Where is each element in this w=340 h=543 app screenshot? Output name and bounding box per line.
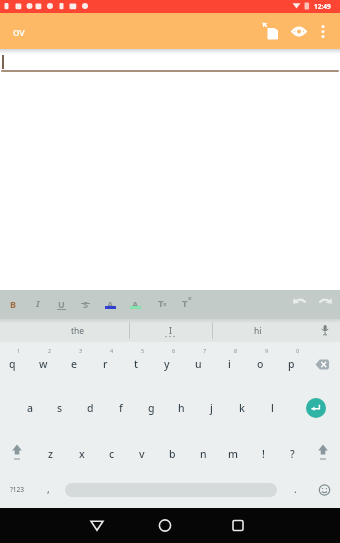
button[interactable]: ?123 — [4, 470, 30, 508]
button[interactable] — [313, 19, 333, 43]
button[interactable]: l — [257, 388, 287, 428]
button[interactable]: j — [196, 388, 226, 428]
staticText: 4 — [110, 347, 114, 354]
button[interactable]: A — [127, 295, 144, 312]
staticText: 8 — [234, 347, 238, 354]
staticText: the — [71, 325, 85, 337]
button[interactable]: A — [102, 295, 119, 312]
button[interactable]: T — [152, 295, 169, 312]
staticText: k — [239, 401, 245, 415]
button[interactable]: z — [36, 434, 66, 474]
staticText: ! — [262, 447, 265, 461]
button[interactable] — [312, 471, 338, 509]
button[interactable]: p — [276, 344, 306, 384]
button[interactable] — [81, 510, 113, 542]
button[interactable] — [0, 290, 340, 320]
staticText: y — [164, 357, 170, 371]
button[interactable]: . — [285, 470, 305, 508]
staticText: t — [134, 357, 139, 371]
button[interactable]: h — [166, 388, 196, 428]
staticText: 3 — [79, 347, 83, 354]
staticText: A — [132, 298, 139, 310]
staticText: 7 — [203, 347, 207, 354]
button[interactable]: T — [176, 295, 193, 312]
staticText: i — [228, 357, 231, 371]
button[interactable]: e — [59, 344, 89, 384]
button[interactable]: U — [53, 295, 70, 312]
button[interactable]: w — [28, 344, 58, 384]
button[interactable]: a — [15, 388, 45, 428]
button[interactable]: b — [157, 434, 187, 474]
button[interactable]: B — [4, 295, 21, 312]
staticText: v — [139, 447, 145, 461]
staticText: e — [71, 357, 78, 371]
button[interactable] — [149, 510, 181, 542]
button[interactable]: c — [97, 434, 127, 474]
staticText: l — [271, 401, 274, 415]
button[interactable] — [314, 293, 335, 313]
staticText: d — [87, 401, 94, 415]
button[interactable]: y — [152, 344, 182, 384]
button[interactable]: o — [245, 344, 275, 384]
button[interactable]: u — [183, 344, 213, 384]
staticText: p — [288, 357, 295, 371]
button[interactable]: ! — [248, 434, 278, 474]
button[interactable]: ? — [277, 434, 307, 474]
button[interactable]: k — [227, 388, 257, 428]
staticText: , — [47, 482, 50, 496]
button[interactable] — [2, 435, 32, 473]
staticText: ?123 — [10, 485, 24, 494]
staticText: 0 — [296, 347, 300, 354]
button[interactable] — [259, 19, 283, 43]
button[interactable]: r — [90, 344, 120, 384]
staticText: x — [79, 447, 85, 461]
button[interactable]: f — [106, 388, 136, 428]
staticText: f — [119, 401, 123, 415]
staticText: 12:49 — [314, 2, 331, 11]
button[interactable] — [287, 19, 311, 43]
staticText: T — [182, 297, 188, 310]
staticText: m — [228, 447, 238, 461]
staticText: j — [210, 401, 213, 415]
staticText: z — [48, 447, 54, 461]
button[interactable]: g — [136, 388, 166, 428]
button[interactable]: i — [214, 344, 244, 384]
staticText: S — [83, 298, 88, 310]
button[interactable] — [305, 344, 340, 382]
button[interactable] — [312, 319, 338, 342]
button[interactable] — [290, 293, 311, 313]
button[interactable]: t — [121, 344, 151, 384]
button[interactable]: v — [127, 434, 157, 474]
button[interactable] — [308, 435, 338, 473]
button[interactable]: hi — [228, 320, 288, 341]
button[interactable]: S — [77, 295, 94, 312]
staticText: g — [148, 401, 155, 415]
staticText: T — [158, 297, 164, 310]
staticText: 6 — [172, 347, 176, 354]
button[interactable]: I — [140, 320, 200, 341]
button[interactable]: n — [188, 434, 218, 474]
staticText: r — [103, 357, 108, 371]
staticText: 9 — [265, 347, 269, 354]
staticText: x — [188, 294, 192, 302]
staticText: ? — [290, 447, 295, 461]
staticText: B — [10, 298, 16, 310]
button[interactable]: q — [0, 344, 27, 384]
staticText: 2 — [48, 347, 52, 354]
button[interactable]: I — [29, 295, 46, 312]
staticText: hi — [254, 325, 262, 337]
staticText: w — [39, 357, 48, 371]
button[interactable] — [306, 398, 326, 418]
staticText: o — [257, 357, 264, 371]
staticText: s — [57, 401, 63, 415]
staticText: U — [58, 298, 65, 310]
staticText: a — [27, 401, 34, 415]
button[interactable]: the — [40, 320, 116, 341]
button[interactable] — [222, 510, 254, 542]
button[interactable]: x — [67, 434, 97, 474]
button[interactable]: m — [218, 434, 248, 474]
button[interactable]: s — [45, 388, 75, 428]
button[interactable]: , — [38, 470, 58, 508]
button[interactable]: d — [75, 388, 105, 428]
